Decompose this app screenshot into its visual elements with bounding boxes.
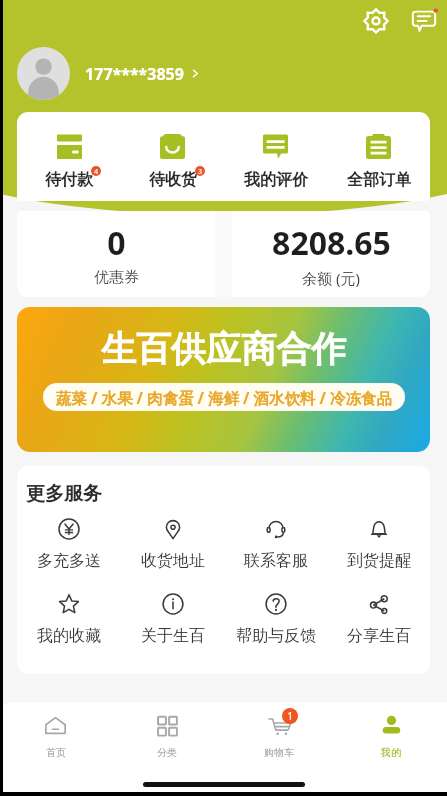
button[interactable]: 到货提醒 <box>327 518 430 571</box>
button[interactable]: 0 <box>17 211 215 297</box>
staticText: 分类 <box>157 746 177 759</box>
staticText: 蔬菜 / 水果 / 肉禽蛋 / 海鲜 / 酒水饮料 / 冷冻食品 <box>56 387 392 408</box>
staticText: 0 <box>107 221 126 265</box>
button[interactable]: 分类 <box>111 702 223 766</box>
staticText: 分享生百 <box>347 626 411 646</box>
staticText: 我的收藏 <box>37 626 101 646</box>
button[interactable]: 待收货 <box>121 112 224 201</box>
staticText: 帮助与反馈 <box>236 626 316 646</box>
staticText: 全部订单 <box>347 170 411 190</box>
button[interactable]: 生百供应商合作 <box>17 307 430 452</box>
button[interactable]: 首页 <box>0 702 111 766</box>
staticText: 多充多送 <box>37 551 101 571</box>
button[interactable]: 分享生百 <box>327 593 430 646</box>
staticText: 生百供应商合作 <box>101 327 346 371</box>
staticText: 收货地址 <box>141 551 205 571</box>
staticText: 首页 <box>46 746 66 759</box>
button[interactable]: 177****3859 <box>17 47 200 100</box>
staticText: 待收货 <box>149 170 197 190</box>
staticText: 177****3859 <box>85 63 184 85</box>
button[interactable]: Settings <box>359 4 393 38</box>
staticText: 关于生百 <box>141 626 205 646</box>
staticText: 购物车 <box>264 746 294 759</box>
button[interactable]: 我的收藏 <box>17 593 121 646</box>
button[interactable]: 收货地址 <box>121 518 224 571</box>
button[interactable]: 联系客服 <box>224 518 327 571</box>
button[interactable]: 多充多送 <box>17 518 121 571</box>
button[interactable]: 关于生百 <box>121 593 224 646</box>
button[interactable]: 待付款 <box>17 112 121 201</box>
staticText: 更多服务 <box>26 482 102 506</box>
staticText: 到货提醒 <box>347 551 411 571</box>
button[interactable]: 1 <box>223 702 335 766</box>
button[interactable]: Messages <box>407 4 441 38</box>
staticText: 8208.65 <box>272 221 391 265</box>
button[interactable]: 我的 <box>335 702 447 766</box>
button[interactable]: 8208.65 <box>232 211 430 297</box>
button[interactable]: 帮助与反馈 <box>224 593 327 646</box>
staticText: 1 <box>287 709 293 723</box>
button[interactable]: 全部订单 <box>327 112 430 201</box>
button[interactable]: 我的评价 <box>224 112 327 201</box>
staticText: 我的 <box>381 746 401 759</box>
staticText: 3 <box>198 167 202 176</box>
staticText: 待付款 <box>45 170 93 190</box>
staticText: 联系客服 <box>244 551 308 571</box>
staticText: 余额 (元) <box>302 268 360 288</box>
staticText: 4 <box>94 167 98 176</box>
staticText: 优惠券 <box>94 268 139 287</box>
staticText: 我的评价 <box>244 170 308 190</box>
